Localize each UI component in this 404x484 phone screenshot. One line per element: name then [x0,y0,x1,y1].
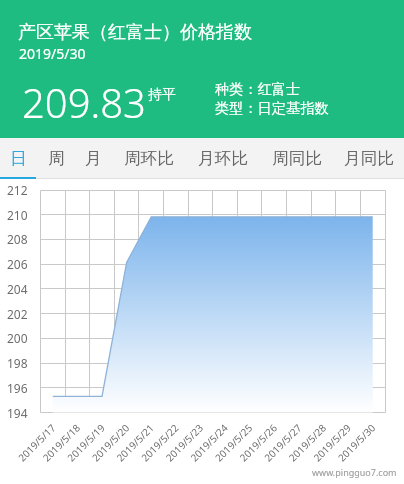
staticText: 周环比 [124,148,174,169]
staticText: 周 [48,148,65,169]
staticText: 209.83 [22,75,146,129]
staticText: 日 [10,148,27,169]
staticText: 产区苹果（红富士）价格指数 [18,21,252,44]
button[interactable]: 日 [0,138,37,179]
button[interactable]: 月 [75,138,111,179]
staticText: 周同比 [272,148,322,169]
button[interactable]: 周环比 [111,138,186,179]
button[interactable]: 月同比 [334,138,404,179]
button[interactable]: 周 [37,138,75,179]
staticText: 月 [85,148,102,169]
staticText: 持平 [148,86,176,104]
button[interactable]: 周同比 [260,138,334,179]
staticText: 种类：红富士 [215,80,301,98]
staticText: 月环比 [198,148,248,169]
staticText: 2019/5/30 [19,44,86,63]
staticText: 类型：日定基指数 [215,99,329,117]
button[interactable]: 月环比 [186,138,260,179]
staticText: 月同比 [344,148,394,169]
